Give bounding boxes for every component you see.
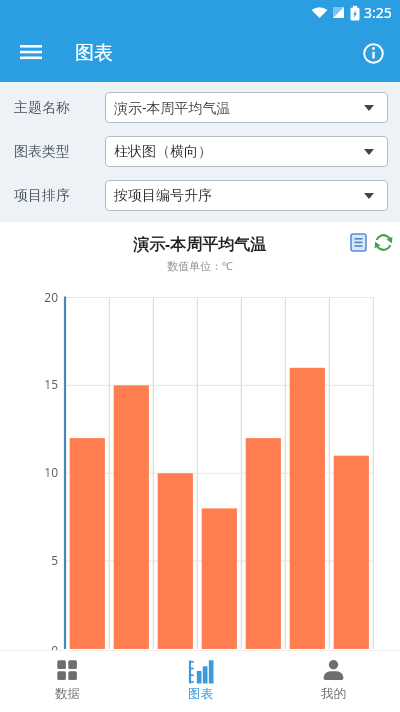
button[interactable]: 图表 — [134, 651, 267, 712]
button[interactable]: 柱状图（横向） — [105, 136, 388, 167]
staticText: 图表 — [188, 686, 213, 702]
staticText: 柱状图（横向） — [114, 143, 212, 161]
staticText: 数据 — [55, 686, 80, 702]
button[interactable]: 我的 — [267, 651, 400, 712]
staticText: 图表类型 — [14, 143, 70, 161]
staticText: 5 — [30, 552, 58, 568]
staticText: 按项目编号升序 — [114, 187, 212, 205]
staticText: 演示-本周平均气温 — [114, 98, 231, 117]
staticText: 主题名称 — [14, 99, 70, 117]
staticText: 图表 — [75, 41, 113, 65]
button[interactable]: 按项目编号升序 — [105, 180, 388, 211]
staticText: 项目排序 — [14, 187, 70, 205]
staticText: 0 — [30, 642, 58, 658]
staticText: 3:25 — [364, 3, 392, 22]
button[interactable] — [374, 233, 393, 252]
staticText: 我的 — [321, 686, 346, 702]
button[interactable]: 数据 — [0, 651, 134, 712]
staticText: 20 — [30, 289, 58, 305]
staticText: 15 — [30, 376, 58, 392]
button[interactable] — [351, 234, 366, 251]
button[interactable]: 演示-本周平均气温 — [105, 92, 388, 123]
staticText: 数值单位：℃ — [167, 258, 233, 273]
staticText: 10 — [30, 464, 58, 480]
staticText: 演示-本周平均气温 — [133, 233, 267, 255]
button[interactable] — [363, 43, 384, 64]
button[interactable] — [20, 45, 42, 59]
